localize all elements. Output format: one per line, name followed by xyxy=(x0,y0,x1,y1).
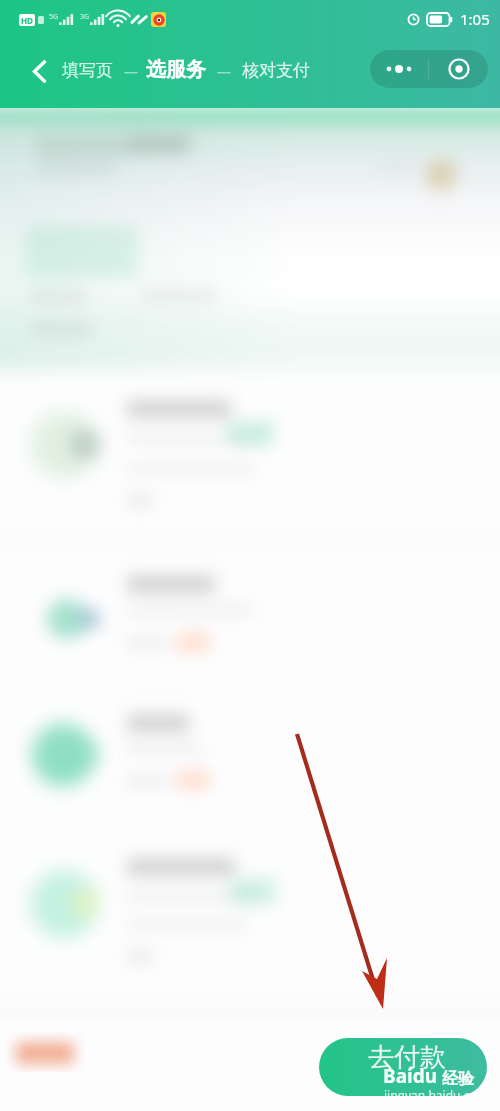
staticText: 去付款 xyxy=(368,1041,446,1074)
staticText: — xyxy=(217,62,231,81)
staticText: HD xyxy=(21,15,33,26)
staticText: 经验 xyxy=(442,1069,474,1089)
staticText: 核对支付 xyxy=(242,60,310,81)
button[interactable] xyxy=(0,372,500,534)
staticText: Baidu xyxy=(383,1063,438,1089)
staticText: 选服务 xyxy=(146,57,206,82)
button[interactable]: Close xyxy=(429,50,488,88)
button[interactable] xyxy=(0,690,500,828)
button[interactable] xyxy=(0,548,500,686)
button[interactable]: 去付款 xyxy=(319,1038,487,1096)
staticText: 1:05 xyxy=(460,9,490,29)
button[interactable]: More options xyxy=(370,50,428,88)
button[interactable]: Back xyxy=(23,55,55,87)
staticText: 3G xyxy=(80,12,90,22)
staticText: — xyxy=(124,62,138,81)
staticText: 5G xyxy=(49,12,59,22)
staticText: 填写页 xyxy=(62,60,113,81)
button[interactable] xyxy=(0,830,500,1000)
staticText: jingyan.baidu.com xyxy=(384,1087,488,1103)
